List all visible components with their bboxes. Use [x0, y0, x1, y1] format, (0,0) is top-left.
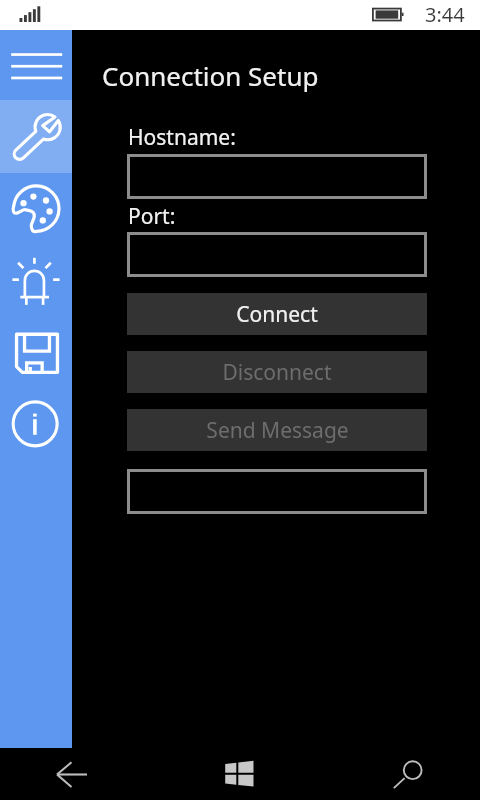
button[interactable]: Disconnect [127, 351, 427, 393]
staticText: Hostname: [128, 123, 236, 152]
button[interactable]: Appearance [0, 173, 72, 245]
button[interactable]: LED [0, 245, 72, 317]
button[interactable]: Menu [0, 30, 72, 100]
staticText: Disconnect [222, 358, 332, 387]
button[interactable] [127, 232, 427, 277]
button[interactable] [127, 469, 427, 514]
button[interactable]: Tools [0, 100, 72, 173]
staticText: Connect [236, 300, 318, 329]
button[interactable]: Search [388, 750, 436, 798]
button[interactable]: Info [0, 388, 72, 460]
button[interactable]: Start [215, 750, 265, 798]
button[interactable] [127, 154, 427, 199]
button[interactable]: Save [0, 317, 72, 389]
staticText: Send Message [206, 416, 349, 445]
staticText: Port: [128, 202, 176, 231]
button[interactable]: Send Message [127, 409, 427, 451]
staticText: 3:44 [425, 1, 465, 28]
button[interactable]: Back [46, 752, 98, 796]
button[interactable]: Connect [127, 293, 427, 335]
staticText: Connection Setup [102, 58, 319, 93]
